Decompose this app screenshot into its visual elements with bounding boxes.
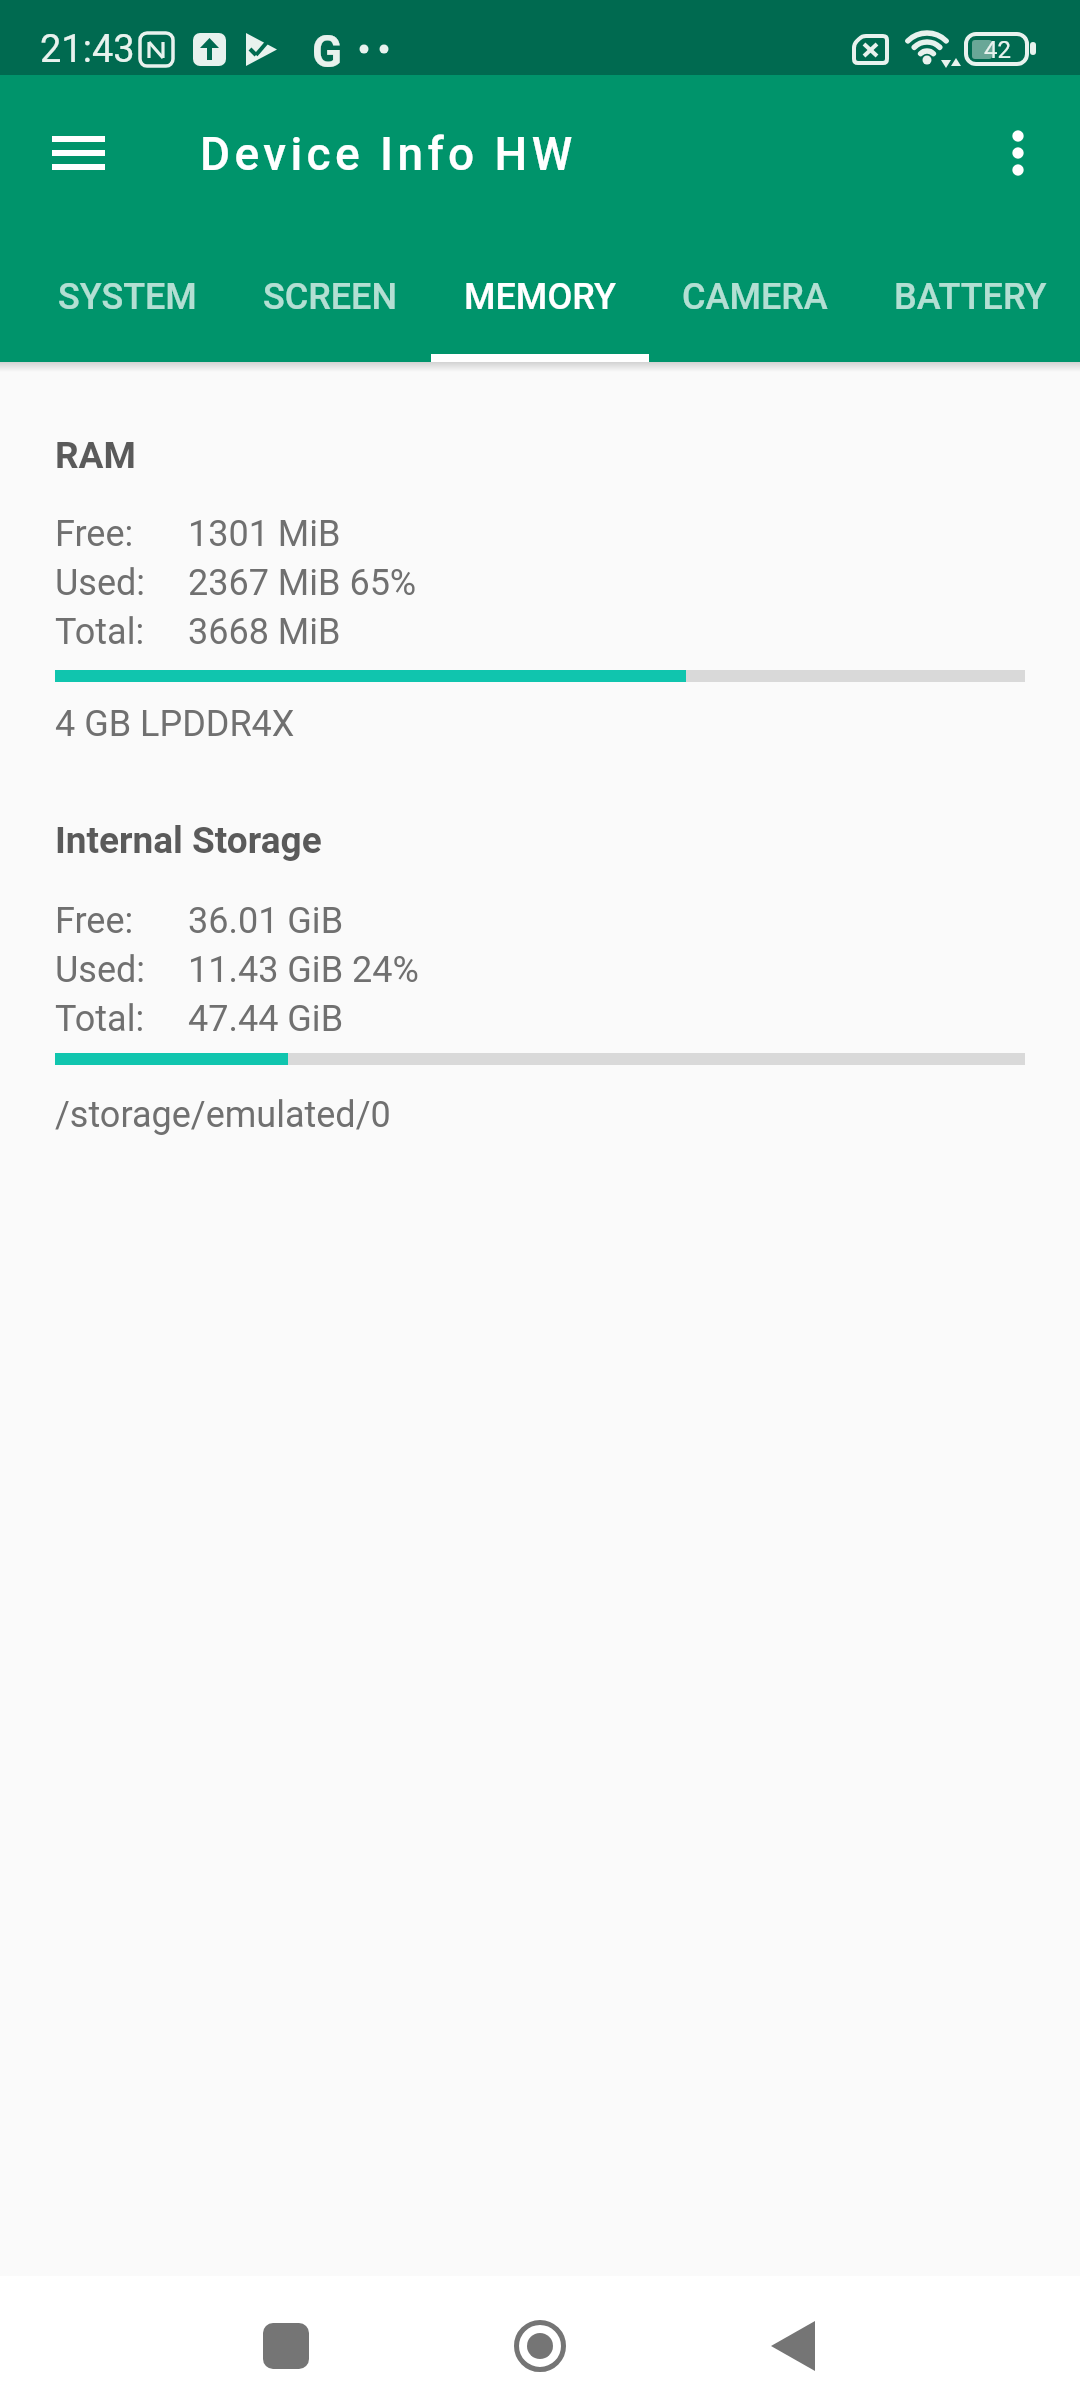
staticText: RAM: [55, 434, 136, 477]
staticText: /storage/emulated/0: [55, 1094, 391, 1136]
staticText: Free:: [55, 513, 134, 555]
staticText: 11.43 GiB 24%: [188, 949, 419, 991]
button[interactable]: [30, 105, 126, 201]
staticText: CAMERA: [682, 276, 828, 318]
staticText: Total:: [55, 998, 145, 1040]
button[interactable]: MEMORY: [431, 232, 649, 362]
button[interactable]: BATTERY: [861, 232, 1079, 362]
staticText: Used:: [55, 949, 146, 991]
staticText: SYSTEM: [58, 276, 197, 318]
staticText: Device Info HW: [200, 127, 577, 181]
staticText: Free:: [55, 900, 134, 942]
staticText: SCREEN: [263, 276, 398, 318]
staticText: G: [312, 26, 342, 78]
staticText: Internal Storage: [55, 819, 322, 862]
staticText: Total:: [55, 611, 145, 653]
staticText: 47.44 GiB: [188, 998, 344, 1040]
staticText: BATTERY: [894, 276, 1047, 318]
button[interactable]: SYSTEM: [18, 232, 236, 362]
button[interactable]: [492, 2298, 588, 2394]
button[interactable]: [745, 2298, 841, 2394]
staticText: 42: [984, 36, 1011, 64]
staticText: 36.01 GiB: [188, 900, 344, 942]
staticText: 1301 MiB: [188, 513, 341, 555]
button[interactable]: SCREEN: [221, 232, 439, 362]
button[interactable]: [238, 2298, 334, 2394]
staticText: 3668 MiB: [188, 611, 341, 653]
staticText: 21:43: [40, 27, 135, 72]
button[interactable]: CAMERA: [646, 232, 864, 362]
staticText: Used:: [55, 562, 146, 604]
staticText: 2367 MiB 65%: [188, 562, 417, 604]
staticText: 4 GB LPDDR4X: [55, 703, 295, 745]
button[interactable]: [970, 105, 1066, 201]
staticText: MEMORY: [464, 276, 616, 318]
